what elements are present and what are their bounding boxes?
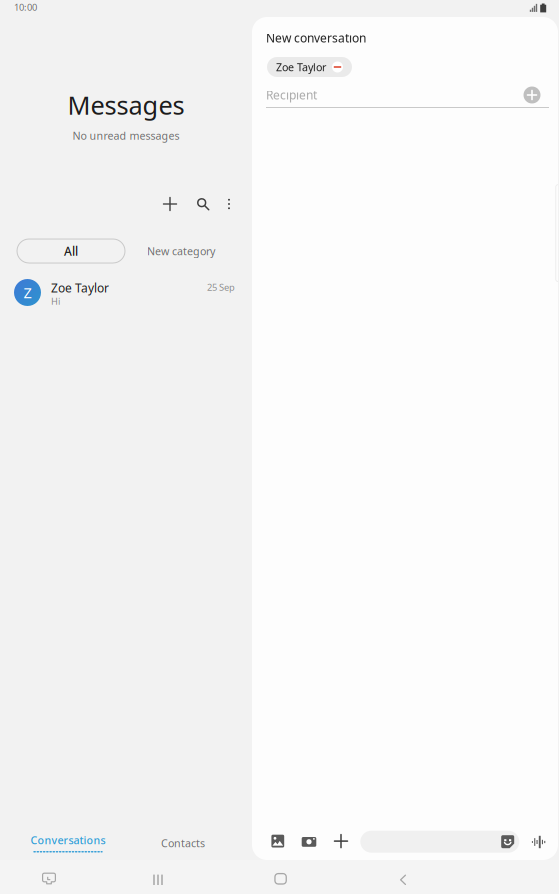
staticText: New category bbox=[147, 244, 215, 258]
button[interactable]: New conversation bbox=[153, 187, 187, 221]
button[interactable]: Search bbox=[186, 187, 220, 221]
staticText: No unread messages bbox=[72, 129, 179, 143]
button[interactable]: Recents bbox=[138, 863, 178, 894]
staticText: New conversation bbox=[266, 30, 366, 46]
staticText: Conversations bbox=[30, 833, 105, 847]
button[interactable]: All bbox=[17, 239, 125, 263]
button[interactable]: New category bbox=[136, 239, 226, 263]
button[interactable]: Conversations bbox=[5, 826, 131, 860]
staticText: All bbox=[64, 243, 78, 259]
staticText: Zoe Taylor bbox=[276, 60, 326, 74]
button[interactable]: More options bbox=[213, 187, 245, 221]
button[interactable]: Home bbox=[261, 862, 301, 894]
button[interactable]: Add recipient bbox=[520, 83, 544, 107]
button[interactable]: Camera bbox=[294, 828, 324, 854]
staticText: 10:00 bbox=[14, 1, 37, 13]
staticText: Contacts bbox=[161, 836, 205, 850]
button[interactable]: Voice message bbox=[532, 835, 546, 848]
button[interactable]: Gallery bbox=[263, 828, 293, 854]
button[interactable]: Attach bbox=[326, 828, 356, 854]
button[interactable]: Message input bbox=[360, 831, 519, 853]
button[interactable]: Screen capture bbox=[29, 862, 69, 894]
staticText: Hi bbox=[51, 295, 60, 307]
staticText: 25 Sep bbox=[207, 281, 235, 293]
button[interactable]: Z bbox=[0, 270, 252, 314]
staticText: Recipient bbox=[266, 87, 317, 103]
staticText: Z bbox=[23, 283, 31, 302]
button[interactable]: Back bbox=[383, 863, 423, 894]
staticText: Messages bbox=[67, 88, 184, 122]
staticText: Zoe Taylor bbox=[51, 280, 109, 296]
button[interactable]: Contacts bbox=[128, 826, 238, 860]
